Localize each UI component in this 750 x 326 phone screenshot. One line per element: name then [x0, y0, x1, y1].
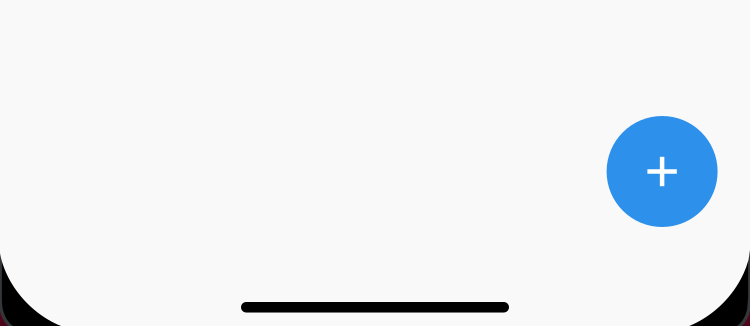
button[interactable]: Add: [607, 116, 718, 227]
